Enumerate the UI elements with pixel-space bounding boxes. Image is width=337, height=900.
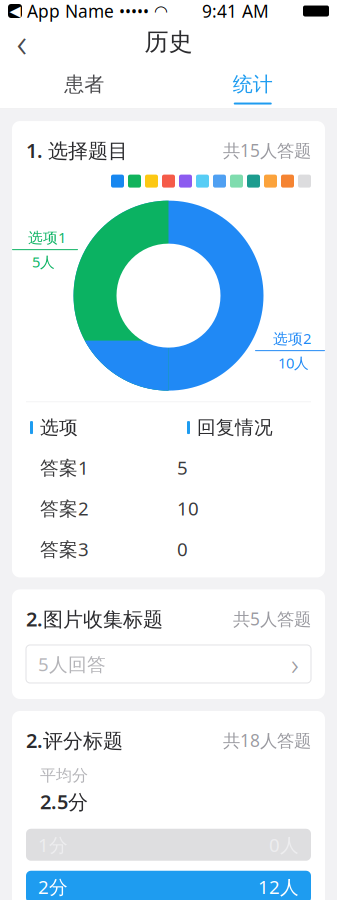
staticText: 5人	[32, 252, 55, 272]
staticText: 1. 选择题目	[26, 137, 128, 164]
staticText: 统计	[233, 72, 273, 97]
button[interactable]: 返回	[0, 22, 44, 62]
staticText: 12人	[258, 874, 299, 899]
staticText: 选项	[40, 416, 78, 439]
staticText: 2分	[38, 874, 68, 899]
staticText: 5人回答	[38, 652, 106, 676]
staticText: 共18人答题	[223, 729, 311, 752]
staticText: 0	[177, 537, 188, 561]
staticText: 1分	[38, 832, 68, 857]
staticText: 0人	[269, 832, 299, 857]
staticText: 10人	[278, 353, 309, 373]
button[interactable]: 5人回答	[26, 645, 311, 683]
staticText: 共15人答题	[223, 139, 311, 162]
staticText: 答案3	[40, 537, 89, 561]
staticText: 回复情况	[197, 416, 273, 439]
staticText: 10	[177, 496, 199, 521]
staticText: 共5人答题	[233, 607, 311, 630]
button[interactable]: 2分	[26, 871, 311, 900]
staticText: 2.评分标题	[26, 727, 123, 754]
staticText: 2.5分	[40, 788, 88, 815]
staticText: 平均分	[40, 765, 88, 785]
staticText: 答案1	[40, 455, 89, 480]
staticText: 答案2	[40, 496, 89, 521]
button[interactable]: 患者	[0, 62, 168, 109]
staticText: ›	[291, 644, 299, 683]
staticText: 选项2	[273, 329, 311, 348]
staticText: 选项1	[28, 228, 66, 247]
staticText: App Name	[27, 0, 114, 22]
staticText: ◀	[9, 3, 20, 19]
staticText: ‹	[16, 15, 27, 68]
staticText: 5	[177, 455, 188, 480]
staticText: •••••	[119, 0, 149, 22]
button[interactable]: 统计	[168, 62, 337, 109]
staticText: 9:41 AM	[202, 0, 269, 22]
staticText: ◠	[154, 2, 168, 20]
staticText: 2.图片收集标题	[26, 605, 163, 632]
staticText: 患者	[64, 72, 104, 97]
staticText: 历史	[144, 27, 192, 57]
